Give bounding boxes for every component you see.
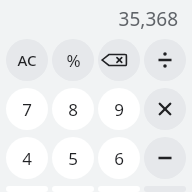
staticText: AC bbox=[17, 50, 37, 70]
button[interactable]: Multiply bbox=[144, 88, 186, 130]
staticText: 9 bbox=[114, 98, 124, 121]
button[interactable]: % bbox=[52, 39, 94, 81]
staticText: 5 bbox=[68, 147, 78, 170]
button[interactable]: 5 bbox=[52, 137, 94, 179]
button[interactable]: 4 bbox=[6, 137, 48, 179]
button[interactable]: AC bbox=[6, 39, 48, 81]
staticText: 8 bbox=[68, 98, 78, 121]
staticText: 35,368 bbox=[118, 6, 178, 32]
staticText: 7 bbox=[22, 98, 32, 121]
button[interactable]: 7 bbox=[6, 88, 48, 130]
staticText: 6 bbox=[114, 147, 124, 170]
button[interactable]: Minus bbox=[144, 137, 186, 179]
button[interactable]: 9 bbox=[98, 88, 140, 130]
staticText: 4 bbox=[22, 147, 32, 170]
staticText: % bbox=[66, 49, 81, 72]
button[interactable]: Backspace bbox=[98, 39, 140, 81]
button[interactable]: 6 bbox=[98, 137, 140, 179]
button[interactable]: Divide bbox=[144, 39, 186, 81]
button[interactable]: 8 bbox=[52, 88, 94, 130]
